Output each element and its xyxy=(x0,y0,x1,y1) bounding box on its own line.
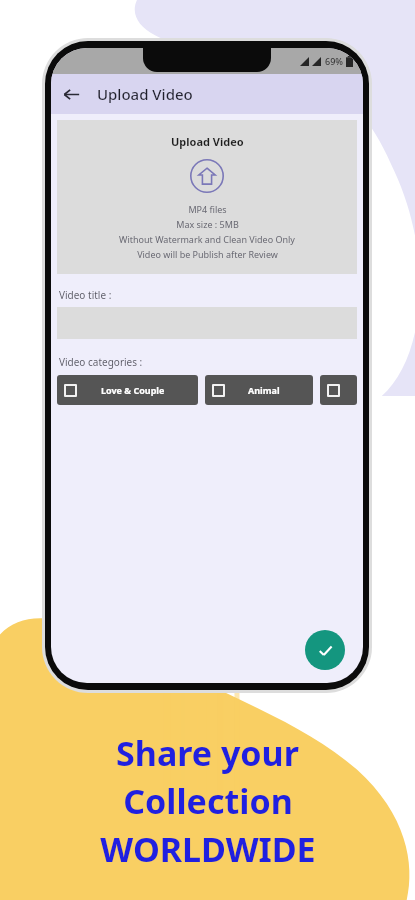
staticText: 69% xyxy=(325,55,343,67)
staticText: MP4 files xyxy=(188,203,227,215)
button[interactable]: Back xyxy=(51,74,91,114)
staticText: Video categories : xyxy=(59,355,143,369)
button[interactable]: Submit xyxy=(305,630,345,670)
staticText: Collection xyxy=(123,778,293,824)
staticText: Share your xyxy=(116,730,299,776)
staticText: Upload Video xyxy=(97,84,193,104)
staticText: Animal xyxy=(248,384,280,396)
button[interactable]: Animal xyxy=(205,375,313,405)
staticText: Without Watermark and Clean Video Only xyxy=(119,233,295,245)
staticText: Max size : 5MB xyxy=(176,218,239,230)
staticText: Love & Couple xyxy=(101,384,165,396)
staticText: Video title : xyxy=(59,288,112,302)
button[interactable] xyxy=(320,375,357,405)
button[interactable]: Love & Couple xyxy=(57,375,198,405)
staticText: Video will be Publish after Review xyxy=(137,248,278,260)
button[interactable]: Upload Video xyxy=(57,120,357,274)
staticText: Upload Video xyxy=(171,134,244,149)
staticText: WORLDWIDE xyxy=(100,826,316,872)
